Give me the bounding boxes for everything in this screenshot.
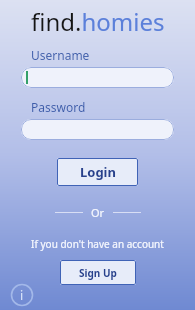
staticText: i xyxy=(20,287,24,303)
staticText: find.homies xyxy=(31,5,165,38)
button[interactable]: Login xyxy=(57,158,138,186)
staticText: Username xyxy=(31,47,90,63)
staticText: If you don't have an account xyxy=(31,237,164,251)
staticText: Login xyxy=(80,163,116,181)
button[interactable] xyxy=(21,119,174,140)
staticText: Or xyxy=(91,205,105,220)
button[interactable]: Information xyxy=(10,283,34,307)
staticText: Password xyxy=(31,99,86,115)
staticText: Sign Up xyxy=(79,266,117,280)
button[interactable] xyxy=(21,67,174,88)
button[interactable]: Sign Up xyxy=(60,260,136,285)
